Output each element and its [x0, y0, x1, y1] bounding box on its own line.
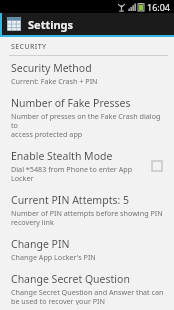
button[interactable]: App icon [7, 17, 21, 31]
staticText: SECURITY [11, 42, 47, 52]
staticText: Number of Fake Presses [11, 96, 131, 110]
button[interactable]: Number of Fake Presses [0, 91, 174, 144]
staticText: Settings [28, 17, 74, 32]
button[interactable]: Current PIN Attempts: 5 [0, 188, 174, 232]
staticText: Current: Fake Crash + PIN [11, 76, 98, 86]
button[interactable]: Change Secret Question [0, 267, 174, 310]
button[interactable]: Change PIN [0, 232, 174, 267]
staticText: Current PIN Attempts: 5 [11, 193, 129, 207]
staticText: Security Method [11, 61, 92, 75]
staticText: 16:04 [147, 1, 171, 13]
staticText: Enable Stealth Mode [11, 149, 113, 163]
button[interactable]: Toggle Enable Stealth Mode [148, 157, 166, 175]
staticText: Change Secret Question and Answer that c… [11, 287, 164, 305]
button[interactable]: Security Method [0, 56, 174, 91]
staticText: Change App Locker's PIN [11, 252, 96, 262]
staticText: Change Secret Question [11, 272, 130, 286]
staticText: Change PIN [11, 237, 70, 251]
staticText: Number of PIN attempts before showing PI… [11, 208, 163, 227]
button[interactable]: Enable Stealth Mode [0, 144, 174, 188]
staticText: Number of presses on the Fake Crash dial… [11, 111, 166, 139]
staticText: Dial *5483 from Phone to enter App Locke… [11, 164, 133, 183]
